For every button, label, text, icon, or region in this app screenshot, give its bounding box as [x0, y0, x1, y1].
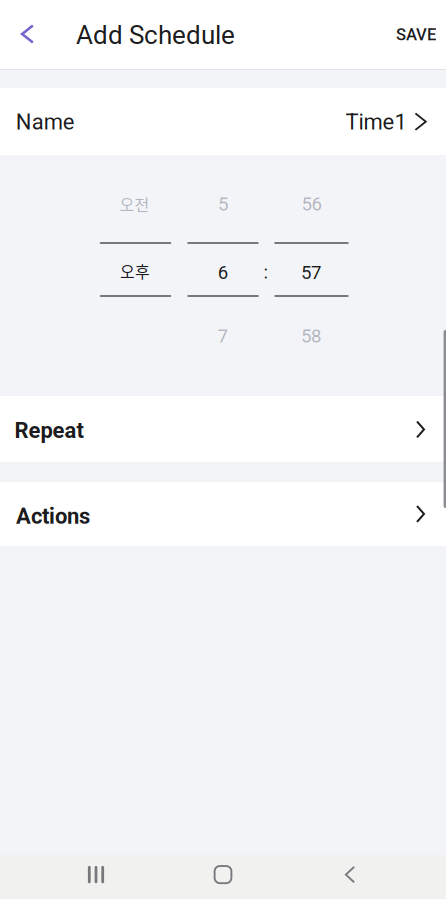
button[interactable]: Back [313, 853, 387, 897]
staticText: 5 [218, 193, 228, 215]
staticText: 56 [302, 193, 322, 215]
button[interactable]: SAVE [376, 0, 446, 69]
staticText: 57 [301, 262, 321, 283]
staticText: 58 [301, 325, 321, 347]
staticText: : [263, 261, 268, 283]
button[interactable]: Name [0, 88, 446, 155]
button[interactable]: Navigate back [0, 0, 55, 68]
staticText: 오후 [120, 259, 150, 283]
staticText: Add Schedule [76, 20, 235, 50]
staticText: Time1 [345, 109, 406, 135]
staticText: SAVE [396, 25, 436, 44]
staticText: 6 [218, 262, 228, 283]
staticText: 7 [217, 325, 227, 347]
staticText: Repeat [14, 418, 83, 443]
button[interactable]: Recent apps [59, 853, 133, 897]
button[interactable]: Actions [0, 482, 446, 546]
staticText: Name [16, 109, 75, 135]
button[interactable]: Repeat [0, 396, 446, 462]
button[interactable]: Home [186, 853, 260, 897]
staticText: 오전 [119, 192, 149, 216]
staticText: Actions [16, 503, 90, 529]
